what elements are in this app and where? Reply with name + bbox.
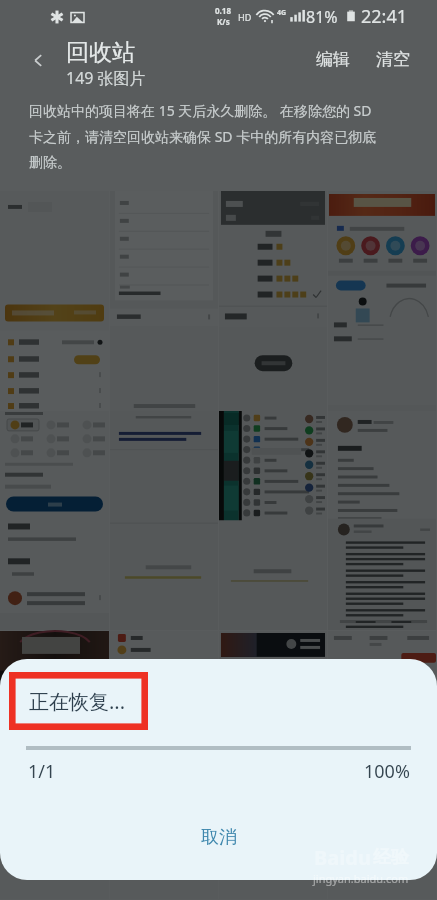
staticText: 经验 bbox=[373, 846, 409, 869]
staticText: 0.18 bbox=[215, 5, 231, 16]
staticText: 取消 bbox=[201, 826, 237, 849]
staticText: 100% bbox=[364, 759, 410, 784]
button[interactable] bbox=[110, 411, 218, 630]
staticText: 81% bbox=[306, 6, 338, 28]
button[interactable] bbox=[0, 631, 109, 850]
button[interactable]: 清空 bbox=[366, 44, 420, 75]
button[interactable]: Back bbox=[22, 44, 54, 76]
button[interactable] bbox=[0, 191, 109, 410]
staticText: 22:41 bbox=[361, 4, 408, 29]
button[interactable] bbox=[0, 851, 109, 899]
staticText: 149 张图片 bbox=[66, 67, 146, 89]
button[interactable] bbox=[219, 411, 327, 630]
button[interactable] bbox=[328, 191, 436, 410]
button[interactable] bbox=[110, 191, 218, 410]
staticText: 回收站 bbox=[66, 38, 135, 67]
button[interactable] bbox=[219, 851, 327, 899]
staticText: 4G bbox=[277, 8, 287, 18]
button[interactable] bbox=[328, 851, 436, 899]
staticText: HD bbox=[238, 11, 252, 23]
button[interactable] bbox=[110, 851, 218, 899]
button[interactable] bbox=[328, 631, 436, 850]
staticText: K/s bbox=[217, 16, 230, 27]
staticText: 正在恢复... bbox=[29, 688, 126, 715]
button[interactable] bbox=[110, 631, 218, 850]
staticText: 清空 bbox=[376, 49, 410, 70]
button[interactable] bbox=[219, 191, 327, 410]
staticText: 1/1 bbox=[28, 759, 56, 784]
button[interactable] bbox=[0, 411, 109, 630]
staticText: 编辑 bbox=[316, 49, 350, 70]
button[interactable] bbox=[328, 411, 436, 630]
staticText: jingyan.baidu.com bbox=[313, 871, 409, 886]
staticText: 回收站中的项目将在 15 天后永久删除。 在移除您的 SD 卡之前，请清空回收站… bbox=[29, 101, 381, 171]
button[interactable] bbox=[219, 631, 327, 850]
button[interactable]: 取消 bbox=[151, 817, 287, 858]
button[interactable]: 编辑 bbox=[306, 44, 360, 75]
